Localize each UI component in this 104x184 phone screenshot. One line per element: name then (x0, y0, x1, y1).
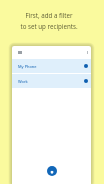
button[interactable]: My Phone (12, 59, 91, 73)
button[interactable]: More options (85, 50, 89, 55)
staticText: My Phone (18, 64, 37, 69)
button[interactable]: Compose (47, 166, 57, 176)
button[interactable]: Work (12, 74, 91, 88)
staticText: First, add a filter to set up recipients… (20, 11, 78, 30)
staticText: Work (18, 79, 28, 84)
